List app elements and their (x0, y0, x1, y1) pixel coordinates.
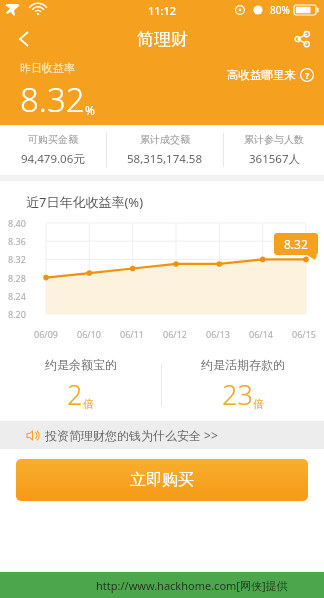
staticText: 8.32 (284, 236, 308, 252)
staticText: 约是活期存款的 (201, 357, 285, 372)
staticText: 昨日收益率 (20, 61, 75, 75)
staticText: 06/09 (34, 328, 58, 340)
staticText: 11:12 (148, 3, 177, 18)
staticText: 8.24 (8, 290, 26, 302)
button[interactable]: 可购买金额 (0, 133, 106, 167)
staticText: 8.32 (20, 77, 85, 122)
staticText: 8.20 (8, 308, 26, 320)
staticText: 8.32 (8, 253, 26, 265)
staticText: 23 (222, 376, 253, 413)
staticText: 约是余额宝的 (45, 357, 117, 372)
staticText: 06/14 (249, 328, 273, 340)
staticText: 94,479.06元 (21, 151, 85, 167)
staticText: % (85, 102, 95, 118)
staticText: 累计成交额 (140, 133, 190, 146)
staticText: 06/12 (163, 328, 187, 340)
staticText: 06/11 (120, 328, 144, 340)
staticText: 361567人 (249, 151, 300, 167)
button[interactable]: 投资简理财您的钱为什么安全 >> (26, 421, 324, 449)
staticText: 8.40 (8, 217, 26, 229)
staticText: http://www.hackhome.com[网侠]提供 (96, 578, 288, 593)
button[interactable]: Share (280, 20, 324, 58)
staticText: 58,315,174.58 (127, 151, 203, 167)
staticText: 80% (270, 3, 290, 17)
staticText: 06/13 (206, 328, 230, 340)
staticText: 简理财 (137, 29, 188, 50)
staticText: 可购买金额 (28, 133, 78, 146)
button[interactable]: 约是余额宝的 (0, 357, 161, 413)
staticText: 2 (67, 376, 83, 413)
button[interactable]: 累计成交额 (107, 133, 223, 167)
staticText: 投资简理财您的钱为什么安全 >> (45, 427, 218, 443)
staticText: ? (305, 69, 310, 81)
staticText: 06/10 (77, 328, 101, 340)
button[interactable]: Back (0, 20, 44, 58)
button[interactable]: 约是活期存款的 (162, 357, 324, 413)
staticText: 立即购买 (130, 470, 194, 490)
button[interactable]: 高收益哪里来 (227, 68, 314, 82)
staticText: 06/15 (292, 328, 316, 340)
staticText: 累计参与人数 (244, 133, 304, 146)
staticText: 倍 (83, 397, 94, 411)
staticText: 高收益哪里来 (227, 68, 296, 82)
staticText: 8.28 (8, 272, 26, 284)
staticText: 近7日年化收益率(%) (26, 193, 144, 211)
button[interactable]: 立即购买 (16, 459, 308, 501)
staticText: 8.36 (8, 235, 26, 247)
staticText: 倍 (253, 397, 264, 411)
button[interactable]: 累计参与人数 (224, 133, 324, 167)
